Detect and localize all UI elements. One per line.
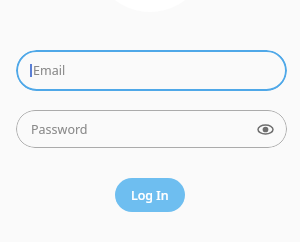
staticText: Password (31, 121, 88, 138)
button[interactable]: Email (16, 50, 287, 91)
staticText: Email (33, 62, 66, 79)
staticText: Log In (131, 187, 169, 204)
button[interactable]: Password (16, 110, 287, 148)
button[interactable]: Show password (255, 119, 275, 139)
button[interactable]: Log In (115, 178, 185, 212)
